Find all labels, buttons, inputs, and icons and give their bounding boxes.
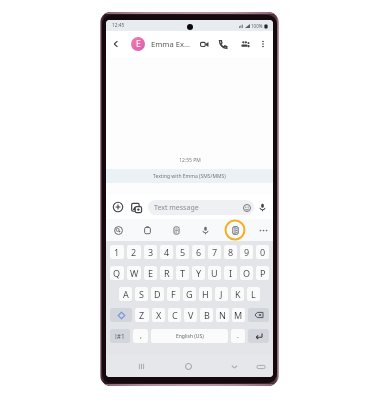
button[interactable]: Shift [110, 308, 132, 322]
staticText: O [243, 267, 251, 279]
button[interactable]: A [119, 287, 132, 301]
button[interactable]: 6 [192, 245, 205, 259]
staticText: 0 [260, 246, 266, 258]
button[interactable]: 4 [160, 245, 173, 259]
button[interactable]: Text message [148, 200, 254, 215]
button[interactable]: M [232, 308, 245, 322]
staticText: J [220, 288, 223, 300]
staticText: D [154, 288, 161, 300]
staticText: M [234, 309, 243, 321]
staticText: F [171, 288, 176, 300]
button[interactable]: Hide keyboard [227, 359, 242, 374]
button[interactable]: L [247, 287, 260, 301]
staticText: 1 [114, 246, 120, 258]
button[interactable]: T [176, 266, 189, 280]
button[interactable]: , [133, 329, 148, 343]
button[interactable]: Gallery [130, 201, 143, 214]
staticText: 12:55 PM [179, 157, 201, 164]
button[interactable]: D [151, 287, 164, 301]
button[interactable]: English (US) [151, 329, 228, 343]
staticText: E [148, 267, 154, 279]
button[interactable]: Add person [238, 37, 252, 51]
button[interactable]: 2 [127, 245, 141, 259]
button[interactable]: 0 [256, 245, 269, 259]
button[interactable]: J [215, 287, 228, 301]
button[interactable]: Y [192, 266, 205, 280]
button[interactable]: W [127, 266, 141, 280]
button[interactable]: Toolbar settings [226, 221, 244, 239]
button[interactable]: More options [256, 37, 270, 51]
button[interactable]: E [144, 266, 157, 280]
button[interactable]: Backspace [248, 308, 269, 322]
button[interactable]: K [231, 287, 244, 301]
staticText: Q [113, 267, 121, 279]
button[interactable]: Z [135, 308, 149, 322]
staticText: 100% [251, 23, 263, 29]
button[interactable]: Recents [134, 359, 149, 374]
button[interactable]: R [160, 266, 173, 280]
staticText: R [164, 267, 170, 279]
staticText: G [186, 288, 193, 300]
button[interactable]: B [200, 308, 213, 322]
staticText: Y [196, 267, 202, 279]
button[interactable]: X [152, 308, 165, 322]
button[interactable]: 1 [110, 245, 124, 259]
button[interactable]: S [135, 287, 148, 301]
button[interactable]: Back [109, 37, 123, 51]
button[interactable]: 5 [176, 245, 189, 259]
button[interactable]: 8 [224, 245, 237, 259]
button[interactable]: O [240, 266, 253, 280]
button[interactable]: Q [110, 266, 124, 280]
button[interactable]: 7 [208, 245, 221, 259]
staticText: E [136, 38, 141, 50]
button[interactable]: Call [215, 37, 229, 51]
staticText: 8 [228, 246, 234, 258]
button[interactable]: Clipboard [138, 221, 156, 239]
button[interactable]: . [231, 329, 245, 343]
button[interactable]: U [208, 266, 221, 280]
staticText: , [140, 331, 142, 341]
staticText: B [204, 309, 210, 321]
button[interactable]: Contact photo [131, 37, 145, 51]
button[interactable]: H [199, 287, 212, 301]
staticText: 3 [148, 246, 154, 258]
button[interactable]: F [167, 287, 180, 301]
button[interactable]: Voice input [256, 201, 269, 214]
staticText: I [229, 267, 233, 279]
button[interactable]: G [183, 287, 196, 301]
staticText: N [219, 309, 226, 321]
button[interactable]: V [184, 308, 197, 322]
button[interactable]: Symbols [110, 329, 130, 343]
staticText: 5 [180, 246, 186, 258]
button[interactable]: 9 [240, 245, 253, 259]
button[interactable]: Enter [248, 329, 269, 343]
button[interactable]: Text templates [167, 221, 185, 239]
button[interactable]: Video call [197, 37, 211, 51]
button[interactable]: More [254, 221, 272, 239]
staticText: A [123, 288, 129, 300]
staticText: T [180, 267, 186, 279]
button[interactable]: Home [181, 359, 196, 374]
button[interactable]: Voice input [196, 221, 214, 239]
button[interactable]: N [216, 308, 229, 322]
staticText: U [211, 267, 218, 279]
button[interactable]: Add attachment [111, 200, 125, 214]
staticText: . [237, 331, 239, 341]
button[interactable]: I [224, 266, 237, 280]
staticText: P [260, 267, 266, 279]
button[interactable]: P [256, 266, 269, 280]
button[interactable]: Switch keyboard [253, 359, 268, 374]
staticText: 2 [131, 246, 137, 258]
staticText: Texting with Emma (SMS/MMS) [153, 173, 226, 180]
staticText: W [130, 267, 139, 279]
staticText: Text message [154, 203, 243, 213]
staticText: 9 [244, 246, 250, 258]
button[interactable]: Stickers [109, 221, 127, 239]
staticText: !#1 [115, 332, 125, 341]
button[interactable]: 3 [144, 245, 157, 259]
button[interactable]: C [168, 308, 181, 322]
staticText: X [156, 309, 162, 321]
staticText: English (US) [176, 333, 204, 340]
staticText: H [202, 288, 209, 300]
staticText: 7 [212, 246, 218, 258]
